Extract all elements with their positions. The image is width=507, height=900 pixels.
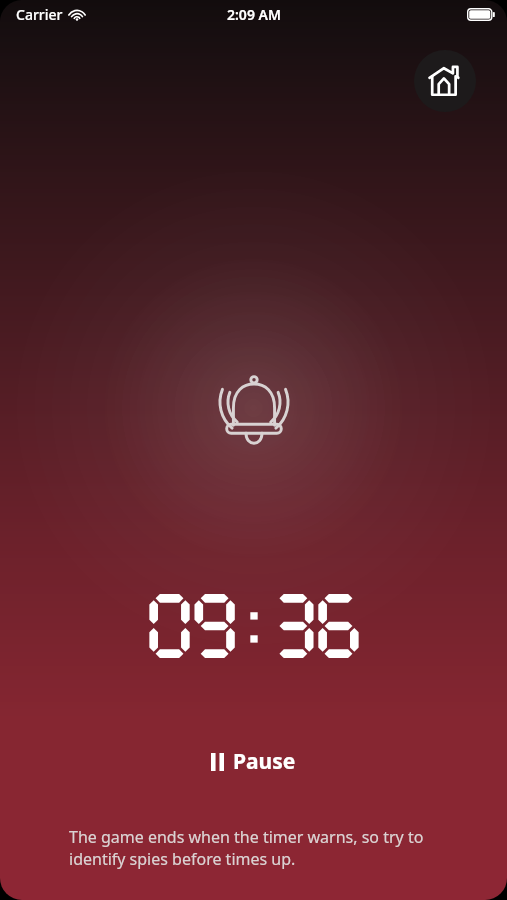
staticText: Carrier <box>16 5 63 24</box>
staticText: Pause <box>233 747 296 776</box>
staticText: 2:09 AM <box>227 5 281 24</box>
button[interactable]: Pause <box>201 742 306 781</box>
staticText: The game ends when the timer warns, so t… <box>69 826 450 870</box>
button[interactable]: Home <box>414 50 476 112</box>
